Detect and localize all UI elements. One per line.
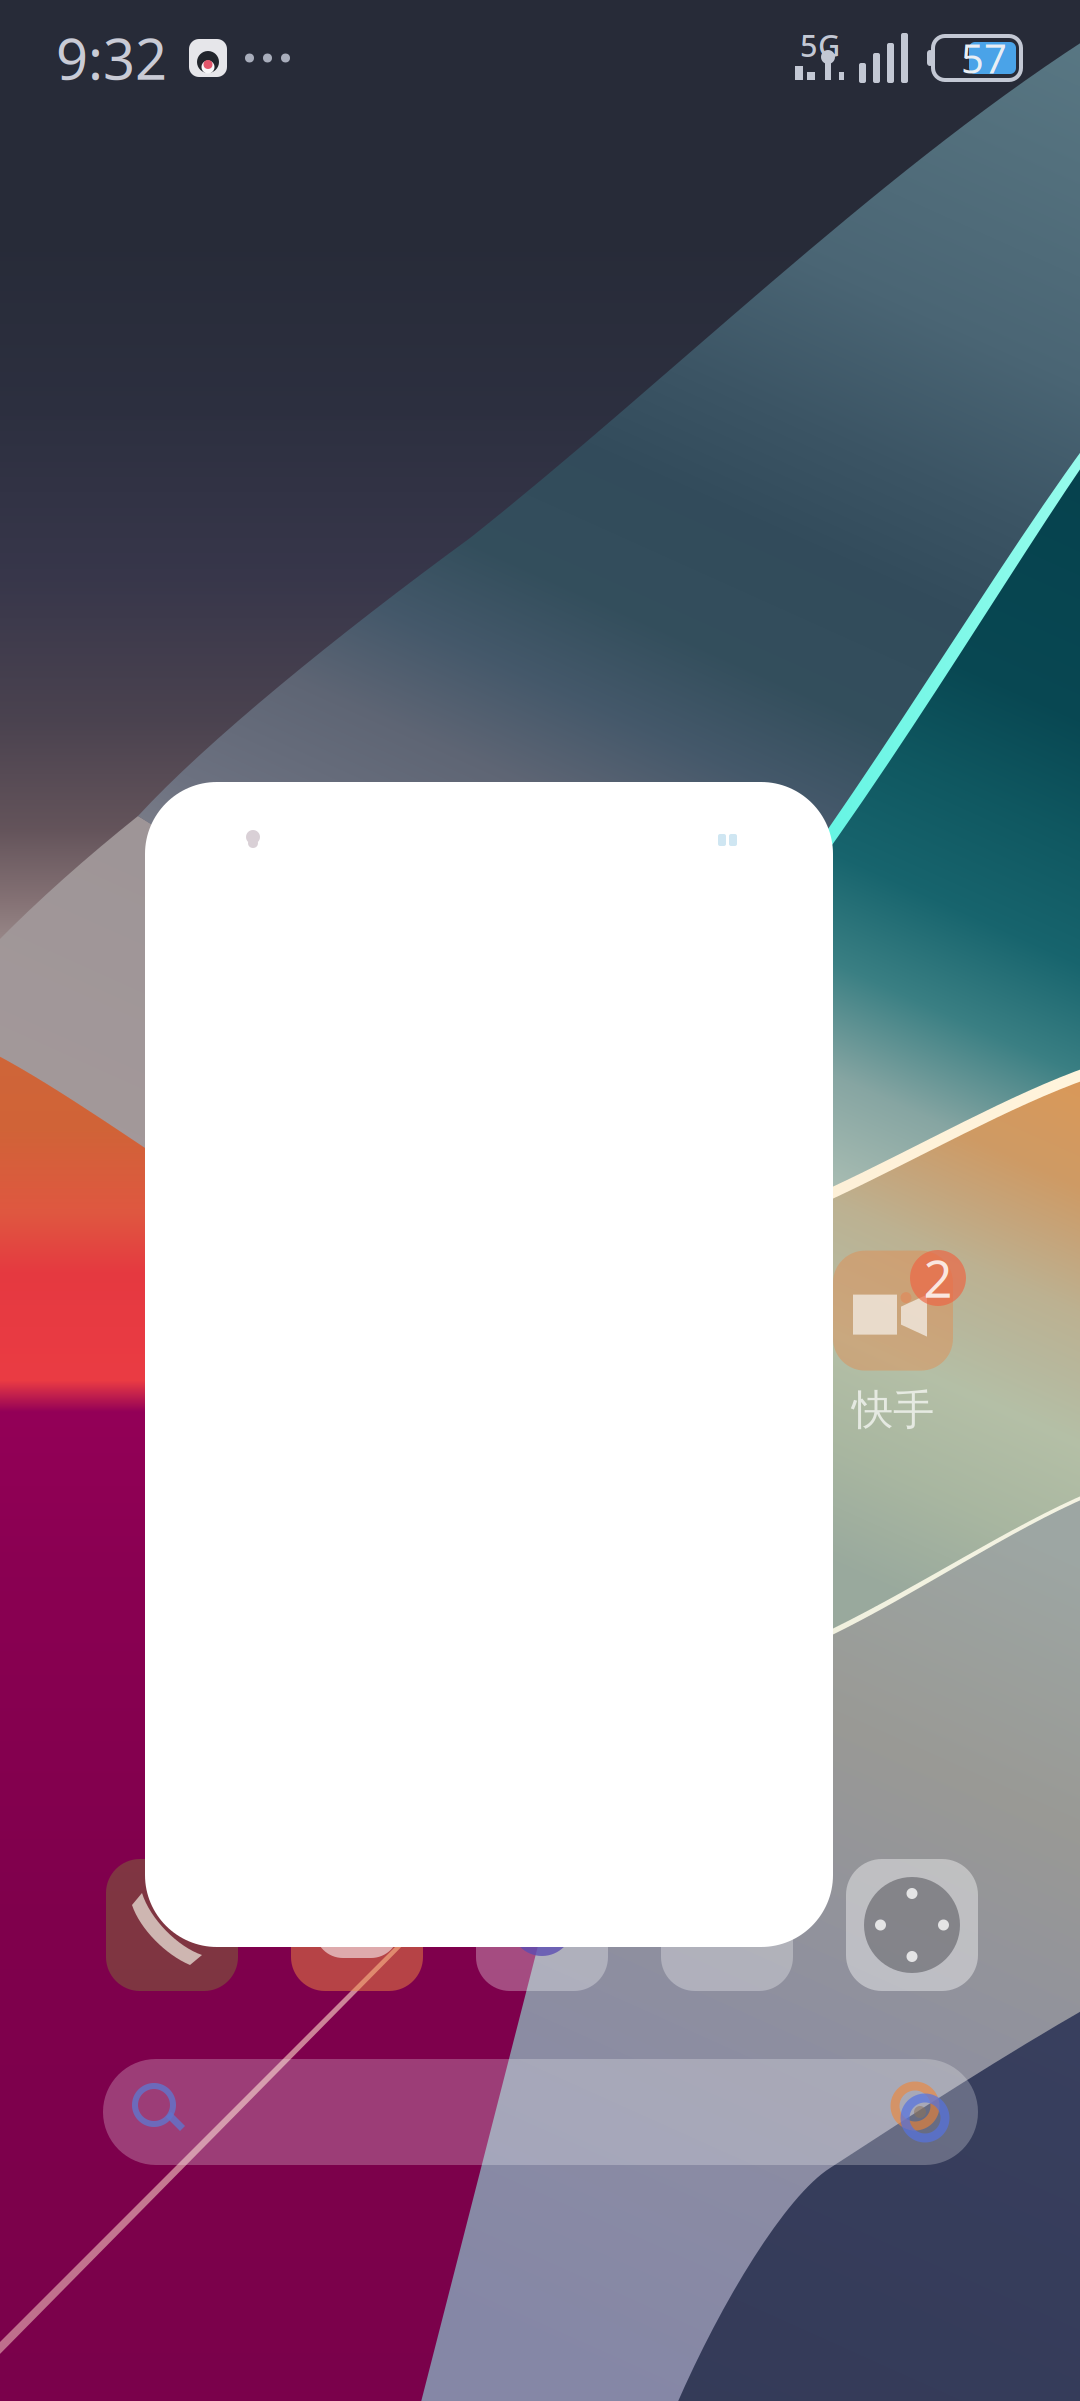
staticText: 快手 xyxy=(852,1385,934,1435)
staticText: 5G xyxy=(800,25,840,65)
staticText: 9:32 xyxy=(56,21,167,95)
staticText: 57 xyxy=(961,31,1007,84)
staticText: 2 xyxy=(923,1244,952,1312)
button[interactable]: 快手 xyxy=(816,1248,970,1438)
button[interactable]: Search xyxy=(103,2059,978,2165)
